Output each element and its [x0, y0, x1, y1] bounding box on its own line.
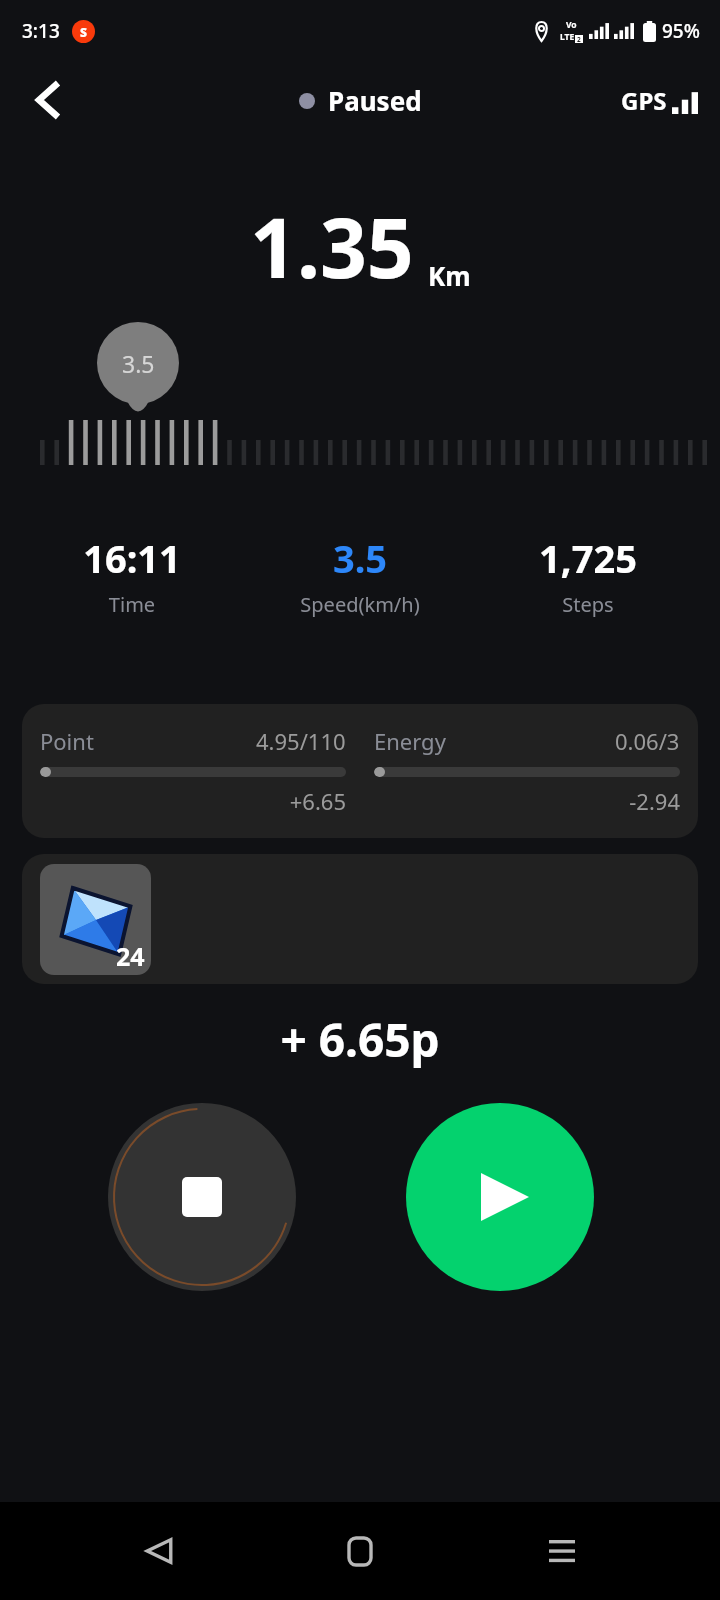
- button[interactable]: 24: [22, 854, 698, 984]
- staticText: Paused: [328, 83, 422, 118]
- button[interactable]: Back: [20, 72, 76, 128]
- staticText: Speed(km/h): [246, 591, 474, 618]
- staticText: Energy: [374, 726, 446, 756]
- staticText: 1.35: [250, 190, 414, 302]
- staticText: Vo: [566, 19, 577, 31]
- staticText: Point: [40, 726, 94, 756]
- staticText: 1,725: [474, 532, 702, 584]
- button[interactable]: Back: [116, 1508, 202, 1594]
- button[interactable]: Point: [22, 704, 698, 838]
- staticText: 2: [577, 35, 581, 43]
- staticText: LTE: [560, 31, 575, 43]
- staticText: + 6.65p: [0, 1008, 720, 1071]
- staticText: 16:11: [18, 532, 246, 584]
- staticText: 3:13: [22, 18, 60, 44]
- button[interactable]: Home: [317, 1508, 403, 1594]
- staticText: Km: [428, 258, 471, 293]
- staticText: GPS: [621, 84, 667, 117]
- staticText: 3.5: [246, 532, 474, 584]
- staticText: S: [80, 24, 87, 40]
- staticText: Time: [18, 591, 246, 618]
- staticText: +6.65: [40, 786, 346, 816]
- button[interactable]: Resume: [406, 1103, 594, 1291]
- staticText: Steps: [474, 591, 702, 618]
- staticText: -2.94: [374, 786, 680, 816]
- staticText: 95%: [662, 18, 700, 44]
- staticText: 0.06/3: [615, 726, 680, 756]
- staticText: 24: [116, 939, 145, 973]
- staticText: 4.95/110: [256, 726, 346, 756]
- staticText: 3.5: [122, 348, 155, 379]
- button[interactable]: Stop: [108, 1103, 296, 1291]
- button[interactable]: GPS signal: [621, 84, 698, 117]
- button[interactable]: Recent apps: [519, 1508, 605, 1594]
